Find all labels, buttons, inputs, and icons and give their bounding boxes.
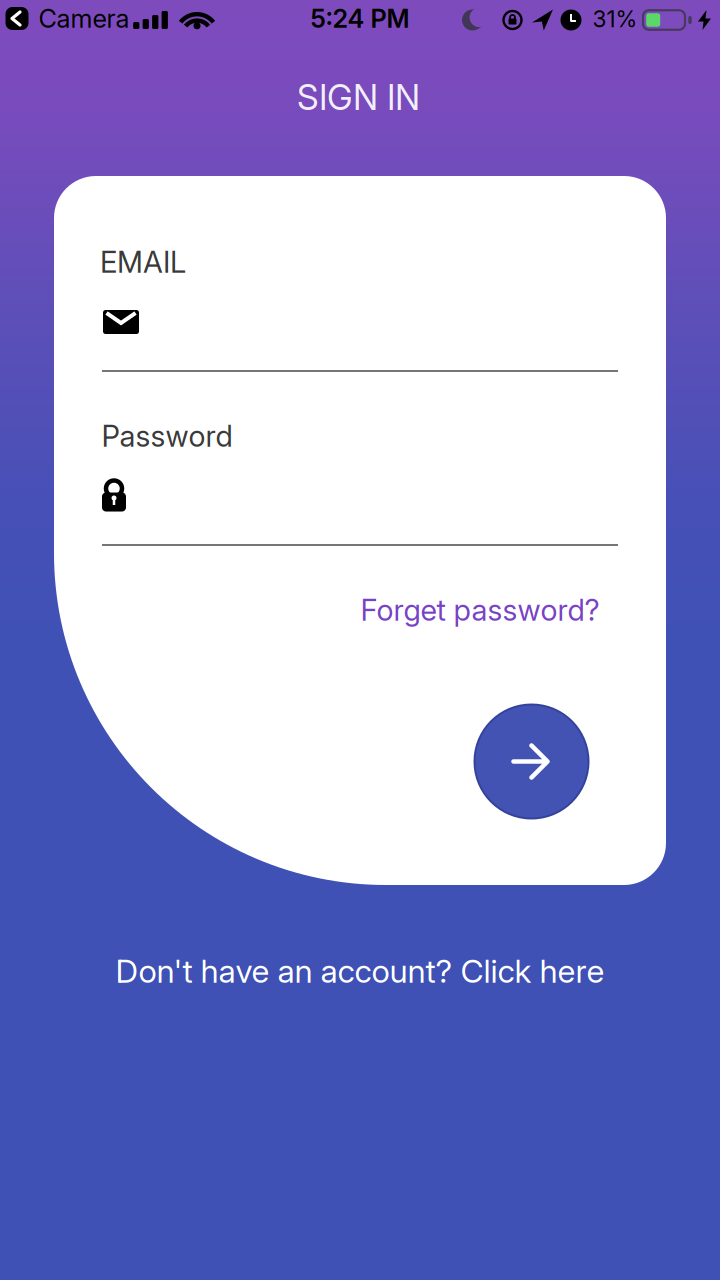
button[interactable]: Sign in <box>474 704 588 818</box>
staticText: Forget password? <box>360 593 599 627</box>
button[interactable]: Forget password? <box>360 593 599 627</box>
button[interactable]: Don't have an account? Click here <box>115 952 604 990</box>
staticText: EMAIL <box>100 245 186 279</box>
staticText: Camera <box>38 4 129 33</box>
staticText: Don't have an account? Click here <box>115 952 604 990</box>
staticText: 31% <box>592 6 637 32</box>
staticText: Password <box>101 419 232 453</box>
staticText: 5:24 PM <box>310 4 409 33</box>
button[interactable]: Back to Camera <box>5 4 129 33</box>
staticText: SIGN IN <box>297 77 420 118</box>
